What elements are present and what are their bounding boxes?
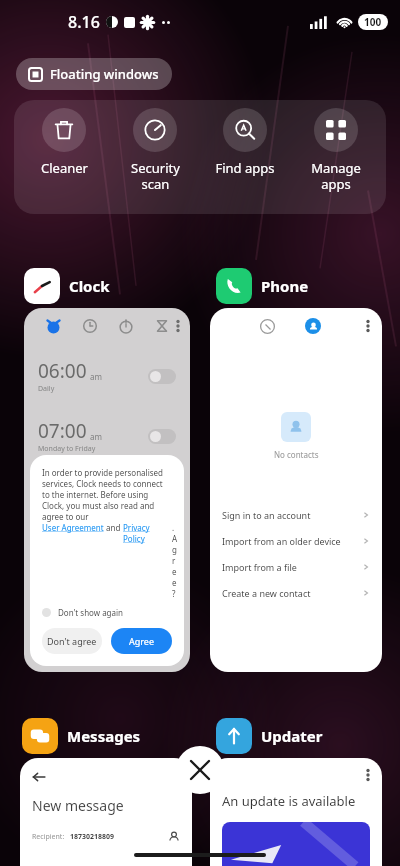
staticText: Don't show again	[58, 607, 124, 618]
staticText: Sat Sun	[38, 504, 63, 514]
button[interactable]: Messages	[22, 718, 141, 754]
button[interactable]: Don't show again	[42, 607, 124, 618]
button[interactable]: Phone	[216, 268, 309, 304]
button[interactable]: Import from an older device	[210, 528, 382, 554]
button[interactable]: 07:00	[38, 418, 176, 454]
button[interactable]: Manage apps	[296, 108, 376, 192]
staticText: and	[104, 522, 123, 533]
staticText: 08:00	[38, 478, 87, 504]
staticText: Cleaner	[41, 159, 88, 177]
button[interactable]: 08:00	[38, 478, 176, 514]
staticText: Agree	[129, 635, 154, 647]
staticText: Recipient:	[32, 832, 65, 842]
staticText: Floating windows	[50, 65, 159, 83]
other: Back	[32, 770, 46, 784]
staticText: Phone	[261, 276, 309, 296]
staticText: New message	[32, 796, 124, 815]
staticText: Create a new contact	[222, 587, 311, 599]
staticText: No contacts	[274, 449, 319, 460]
button[interactable]: Sign in to an account	[210, 502, 382, 528]
button[interactable]: Don't agree	[42, 628, 102, 654]
button[interactable]: Cleaner	[24, 108, 104, 177]
button[interactable]: Floating windows	[16, 58, 172, 90]
button[interactable]: Import from a file	[210, 554, 382, 580]
staticText: Messages	[67, 726, 141, 746]
button[interactable]: Close all	[176, 746, 224, 794]
button[interactable]: Create a new contact	[210, 580, 382, 606]
staticText: 07:00	[38, 418, 87, 444]
staticText: In order to provide personalised service…	[42, 467, 172, 522]
staticText: 06:00	[38, 358, 87, 384]
staticText: Clock	[69, 276, 110, 296]
staticText: 8.16	[68, 11, 100, 33]
staticText: Monday to Friday	[38, 444, 96, 454]
staticText: am	[90, 431, 102, 442]
button[interactable]: 06:00	[38, 358, 176, 394]
staticText: An update is available	[222, 792, 356, 810]
button[interactable]: 06:00	[24, 308, 190, 672]
button[interactable]: Back	[20, 758, 192, 866]
button[interactable]: No contacts	[210, 308, 382, 672]
staticText: Import from an older device	[222, 535, 341, 547]
button[interactable]	[148, 369, 176, 384]
staticText: Import from a file	[222, 561, 297, 573]
staticText: Don't agree	[47, 635, 97, 647]
button[interactable]: Clock	[24, 268, 110, 304]
staticText: Security scan	[131, 159, 180, 192]
button[interactable]: Security scan	[115, 108, 195, 192]
button[interactable]: Find apps	[205, 108, 285, 177]
staticText: 100	[364, 15, 382, 29]
button[interactable]: An update is available	[210, 758, 382, 866]
button[interactable]: User Agreement	[42, 522, 104, 533]
button[interactable]	[148, 429, 176, 444]
staticText: Manage apps	[311, 159, 361, 192]
staticText: Sign in to an account	[222, 509, 311, 521]
button[interactable]	[148, 489, 176, 504]
staticText: Updater	[261, 726, 323, 746]
button[interactable]: Updater	[216, 718, 323, 754]
button[interactable]: Agree	[111, 628, 172, 654]
staticText: 18730218809	[70, 832, 115, 842]
other: Pick contact	[168, 831, 180, 843]
staticText: Find apps	[215, 159, 275, 177]
staticText: Daily	[38, 384, 55, 394]
button[interactable]: Privacy Policy	[123, 522, 172, 544]
staticText: am	[90, 371, 102, 382]
staticText: am	[90, 491, 102, 502]
